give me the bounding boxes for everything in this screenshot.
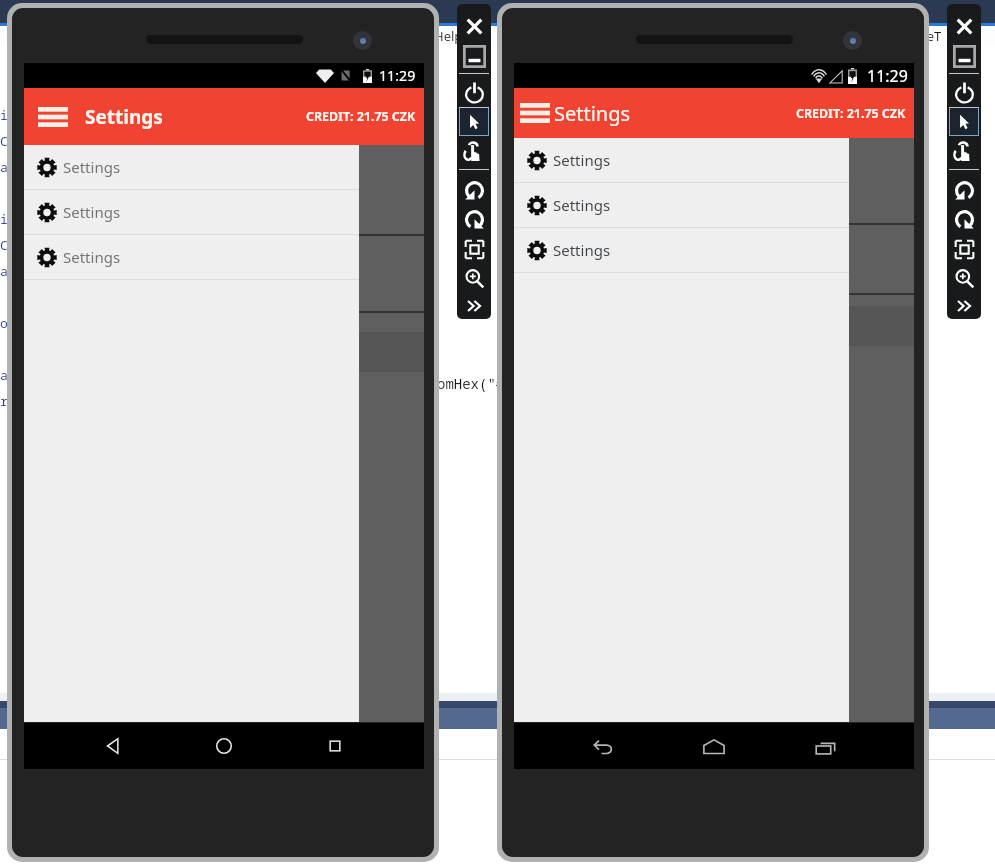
button[interactable]: Zoom — [949, 263, 979, 293]
staticText: Help — [434, 27, 463, 45]
staticText: Settings — [85, 104, 163, 130]
button[interactable]: Minimize — [459, 41, 489, 71]
button[interactable]: Open navigation menu — [35, 97, 71, 137]
staticText: Settings — [553, 150, 611, 170]
staticText: teT — [922, 27, 942, 45]
staticText: i — [0, 210, 8, 228]
button[interactable]: Back — [91, 724, 135, 768]
button[interactable]: Settings — [24, 235, 424, 279]
button[interactable]: Settings — [514, 228, 914, 272]
button[interactable]: Power — [459, 77, 489, 107]
staticText: 11:29 — [867, 65, 908, 87]
button[interactable]: Rotate right — [949, 205, 979, 235]
staticText: omHex("# — [437, 374, 505, 393]
button[interactable]: Pointer — [459, 107, 489, 137]
button[interactable]: Close — [459, 11, 489, 41]
staticText: CREDIT: 21.75 CZK — [796, 105, 906, 122]
staticText: CREDIT: 21.75 CZK — [306, 108, 416, 125]
button[interactable]: Rotate right — [459, 205, 489, 235]
button[interactable]: Back — [581, 724, 625, 768]
staticText: Settings — [63, 247, 121, 267]
staticText: a — [0, 158, 8, 176]
button[interactable]: Screenshot — [949, 234, 979, 264]
button[interactable]: Rotate left — [949, 176, 979, 206]
button[interactable]: Pointer — [949, 107, 979, 137]
staticText: Settings — [63, 202, 121, 222]
button[interactable]: Recent apps — [803, 724, 847, 768]
staticText: a — [0, 262, 8, 280]
button[interactable]: Minimize — [949, 41, 979, 71]
staticText: o — [0, 314, 8, 332]
button[interactable]: Touch input — [459, 135, 489, 165]
staticText: C — [0, 132, 8, 150]
staticText: Settings — [553, 240, 611, 260]
button[interactable]: Power — [949, 77, 979, 107]
button[interactable]: More — [459, 291, 489, 319]
button[interactable]: Touch input — [949, 135, 979, 165]
button[interactable]: Screenshot — [459, 234, 489, 264]
staticText: r — [0, 392, 8, 410]
button[interactable]: Home — [202, 724, 246, 768]
button[interactable]: Settings — [24, 145, 424, 189]
staticText: Settings — [63, 157, 121, 177]
button[interactable]: Recent apps — [313, 724, 357, 768]
button[interactable]: Zoom — [459, 263, 489, 293]
staticText: 11:29 — [379, 66, 416, 85]
button[interactable]: Close — [949, 11, 979, 41]
staticText: C — [0, 236, 8, 254]
button[interactable]: Settings — [24, 190, 424, 234]
staticText: Settings — [554, 100, 631, 127]
button[interactable]: Settings — [514, 138, 914, 182]
button[interactable]: Open navigation menu — [517, 93, 553, 133]
staticText: i — [0, 106, 8, 124]
button[interactable]: Rotate left — [459, 176, 489, 206]
staticText: Settings — [553, 195, 611, 215]
staticText: a — [0, 366, 8, 384]
button[interactable]: Home — [692, 724, 736, 768]
button[interactable]: Settings — [514, 183, 914, 227]
button[interactable]: More — [949, 291, 979, 319]
